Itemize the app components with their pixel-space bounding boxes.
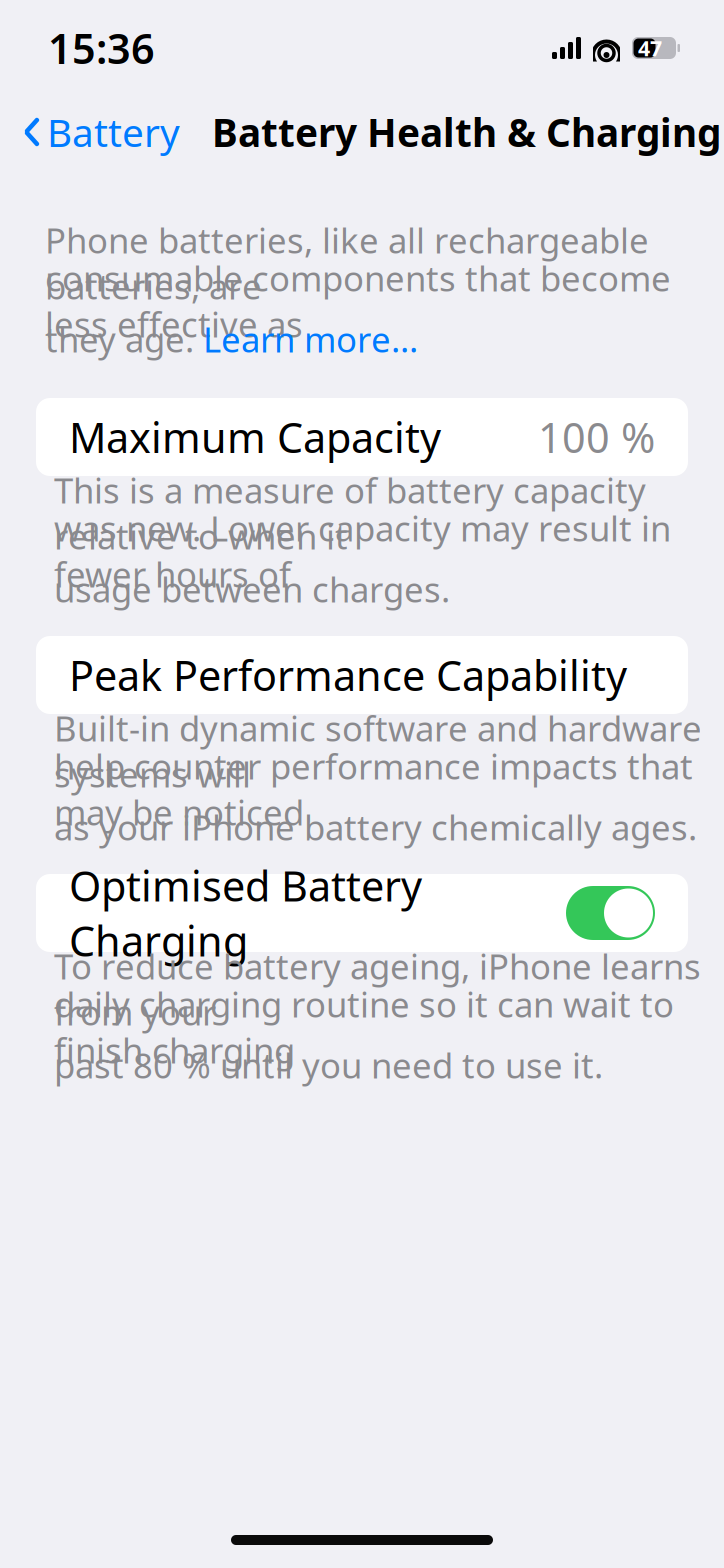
staticText: was new. Lower capacity may result in fe… <box>54 505 671 597</box>
staticText: daily charging routine so it can wait to… <box>54 981 674 1073</box>
staticText: 100 % <box>538 410 655 464</box>
button[interactable]: Battery <box>0 103 190 161</box>
staticText: 47 <box>638 34 662 62</box>
staticText: Maximum Capacity <box>69 410 441 464</box>
staticText: past 80 % until you need to use it. <box>54 1042 603 1088</box>
staticText: Battery <box>47 106 180 158</box>
staticText: help counter performance impacts that ma… <box>54 743 693 835</box>
staticText: This is a measure of battery capacity re… <box>54 467 646 559</box>
button[interactable]: Peak Performance Capability <box>36 636 688 714</box>
button[interactable]: Maximum Capacity <box>36 398 688 476</box>
staticText: Battery Health & Charging <box>212 106 721 158</box>
staticText: Learn more... <box>203 316 418 362</box>
staticText: Phone batteries, like all rechargeable b… <box>45 217 649 309</box>
staticText: 15:36 <box>48 21 155 75</box>
staticText: Optimised Battery Charging <box>69 858 422 968</box>
staticText: To reduce battery ageing, iPhone learns … <box>54 943 701 1035</box>
staticText: usage between charges. <box>54 566 450 612</box>
staticText: Peak Performance Capability <box>69 648 627 702</box>
staticText: as your iPhone battery chemically ages. <box>54 804 697 850</box>
staticText: they age. <box>45 316 203 362</box>
staticText: consumable components that become less e… <box>45 255 671 347</box>
button[interactable]: Learn more... <box>203 316 418 362</box>
staticText: Built-in dynamic software and hardware s… <box>54 705 702 797</box>
button[interactable]: Optimised Battery Charging <box>36 874 688 952</box>
